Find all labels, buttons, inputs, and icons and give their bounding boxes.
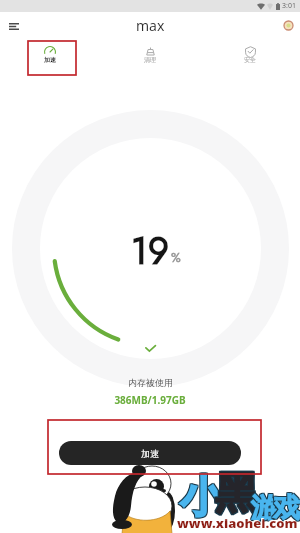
staticText: 游	[250, 492, 277, 526]
staticText: 小	[181, 470, 224, 524]
staticText: 戏	[273, 491, 300, 525]
staticText: 游	[252, 491, 279, 525]
staticText: www.xiaohei.com	[177, 514, 298, 532]
staticText: 黑	[214, 466, 257, 520]
button[interactable]: 加速	[0, 38, 100, 78]
staticText: 黑	[214, 467, 257, 521]
staticText: 3:01	[282, 1, 296, 11]
staticText: 戏	[273, 490, 300, 524]
button[interactable]: Account	[280, 17, 296, 33]
staticText: 加速	[44, 56, 56, 64]
staticText: 戏	[274, 491, 300, 525]
staticText: 小	[179, 471, 222, 525]
staticText: 小	[180, 469, 223, 523]
staticText: 戏	[272, 491, 299, 525]
staticText: 戏	[274, 492, 300, 526]
staticText: 游	[252, 490, 279, 524]
button[interactable]: Menu	[4, 16, 24, 36]
button[interactable]: 清理	[100, 38, 200, 78]
staticText: 黑	[214, 468, 257, 522]
staticText: 戏	[273, 492, 300, 526]
staticText: 戏	[274, 490, 300, 524]
staticText: 游	[251, 490, 278, 524]
staticText: 19	[131, 224, 169, 277]
button[interactable]: 安全	[200, 38, 300, 78]
staticText: 黑	[216, 468, 259, 522]
staticText: 黑	[216, 467, 259, 521]
staticText: 386MB/1.97GB	[114, 393, 186, 407]
staticText: 游	[251, 491, 278, 525]
staticText: 加速	[141, 448, 159, 459]
staticText: max	[136, 16, 165, 35]
staticText: 小	[179, 469, 222, 523]
staticText: 戏	[272, 490, 299, 524]
staticText: 清理	[144, 56, 156, 64]
staticText: 黑	[216, 466, 259, 520]
staticText: 小	[179, 470, 222, 524]
staticText: 黑	[215, 466, 258, 520]
staticText: 小	[181, 469, 224, 523]
staticText: 游	[250, 490, 277, 524]
staticText: 安全	[244, 56, 256, 64]
staticText: 小	[181, 471, 224, 525]
staticText: 戏	[272, 492, 299, 526]
staticText: 黑	[215, 467, 258, 521]
staticText: 小	[180, 470, 223, 524]
staticText: 游	[250, 491, 277, 525]
staticText: 游	[252, 492, 279, 526]
staticText: www.xiaohei.com	[176, 513, 297, 531]
staticText: 游	[251, 492, 278, 526]
staticText: %	[171, 248, 181, 267]
staticText: 内存被使用	[128, 377, 173, 388]
button[interactable]: 加速	[59, 441, 241, 465]
staticText: 小	[180, 471, 223, 525]
staticText: 黑	[215, 468, 258, 522]
